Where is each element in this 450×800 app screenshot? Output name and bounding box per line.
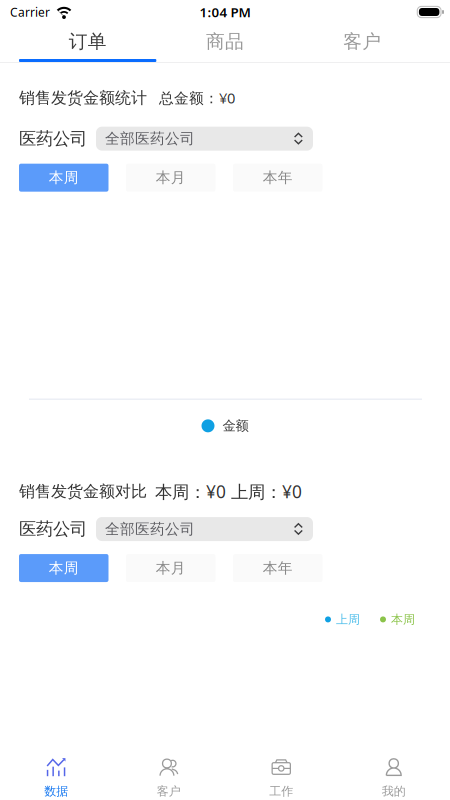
staticText: 本月 bbox=[156, 169, 186, 187]
button[interactable]: 我的 bbox=[337, 745, 450, 800]
staticText: 全部医药公司 bbox=[105, 520, 195, 538]
button[interactable]: 本月 bbox=[126, 164, 215, 192]
staticText: 医药公司 bbox=[19, 518, 87, 540]
staticText: 本年 bbox=[263, 169, 293, 187]
staticText: 销售发货金额对比 bbox=[19, 482, 147, 501]
staticText: Carrier bbox=[10, 4, 50, 20]
staticText: 本年 bbox=[263, 559, 293, 577]
staticText: 金额 bbox=[222, 418, 248, 434]
staticText: 本月 bbox=[156, 559, 186, 577]
staticText: 商品 bbox=[206, 30, 244, 53]
staticText: 本周 bbox=[391, 612, 415, 627]
button[interactable]: 本周 bbox=[19, 164, 108, 192]
button[interactable]: 订单 bbox=[19, 24, 156, 62]
button[interactable]: 数据 bbox=[0, 745, 112, 800]
staticText: 本周 bbox=[49, 169, 79, 187]
staticText: 总金额：¥0 bbox=[159, 88, 235, 108]
button[interactable]: 工作 bbox=[225, 745, 337, 800]
staticText: 客户 bbox=[157, 784, 181, 799]
button[interactable]: 商品 bbox=[156, 24, 294, 62]
button[interactable]: 客户 bbox=[112, 745, 225, 800]
staticText: 1:04 PM bbox=[199, 3, 250, 21]
staticText: 本周 bbox=[49, 559, 79, 577]
staticText: 上周 bbox=[336, 612, 360, 627]
button[interactable]: 全部医药公司 bbox=[96, 127, 313, 151]
button[interactable]: 本年 bbox=[233, 554, 322, 582]
button[interactable]: 本周 bbox=[19, 554, 108, 582]
staticText: 工作 bbox=[269, 784, 293, 799]
staticText: 医药公司 bbox=[19, 128, 87, 149]
staticText: 数据 bbox=[44, 784, 68, 799]
staticText: 客户 bbox=[343, 30, 381, 53]
button[interactable]: 客户 bbox=[294, 24, 431, 62]
button[interactable]: 全部医药公司 bbox=[96, 517, 313, 541]
button[interactable]: 本月 bbox=[126, 554, 215, 582]
staticText: 我的 bbox=[382, 784, 406, 799]
staticText: 销售发货金额统计 bbox=[19, 88, 147, 108]
staticText: 订单 bbox=[69, 30, 107, 53]
button[interactable]: 本年 bbox=[233, 164, 322, 192]
staticText: 全部医药公司 bbox=[105, 130, 195, 148]
staticText: 本周：¥0 上周：¥0 bbox=[155, 480, 302, 503]
